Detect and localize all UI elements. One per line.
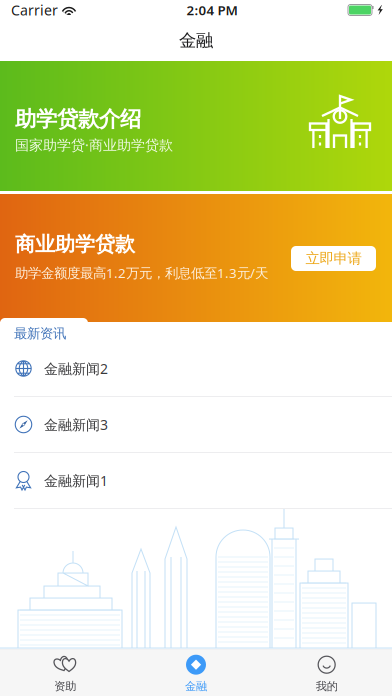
button[interactable]: 我的 <box>261 649 392 696</box>
staticText: Carrier <box>11 0 58 20</box>
staticText: 立即申请 <box>305 249 361 267</box>
staticText: 助学金额度最高1.2万元，利息低至1.3元/天 <box>15 264 268 282</box>
button[interactable]: 金融新闻2 <box>0 341 392 397</box>
staticText: 金融新闻1 <box>44 471 108 490</box>
button[interactable]: 资助 <box>0 649 131 696</box>
staticText: 金融新闻2 <box>44 359 108 378</box>
staticText: 最新资讯 <box>14 325 66 342</box>
staticText: 金融 <box>179 30 213 51</box>
staticText: 国家助学贷·商业助学贷款 <box>15 135 173 154</box>
staticText: 我的 <box>316 679 338 693</box>
staticText: 2:04 PM <box>186 1 237 19</box>
button[interactable]: 金融 <box>131 649 261 696</box>
button[interactable]: 金融新闻1 <box>0 453 392 509</box>
staticText: 助学贷款介绍 <box>15 106 141 132</box>
button[interactable]: 立即申请 <box>291 246 376 271</box>
staticText: 商业助学贷款 <box>15 232 135 257</box>
staticText: 金融新闻3 <box>44 415 108 434</box>
staticText: 金融 <box>185 679 207 693</box>
button[interactable]: 金融新闻3 <box>0 397 392 453</box>
staticText: 资助 <box>54 679 76 693</box>
